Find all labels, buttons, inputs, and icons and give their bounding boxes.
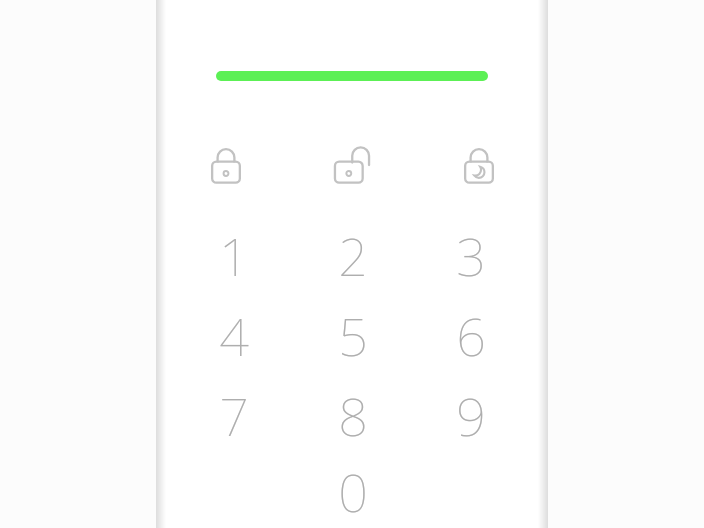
staticText: 8 [338, 380, 368, 451]
button[interactable]: 8 [305, 375, 401, 455]
staticText: 9 [456, 380, 486, 451]
button[interactable]: Night lock [439, 138, 519, 198]
button[interactable]: Locked [186, 138, 266, 198]
staticText: 2 [338, 220, 368, 291]
button[interactable]: Unlocked [313, 138, 393, 198]
staticText: 3 [456, 220, 486, 291]
staticText: 6 [456, 300, 486, 371]
button[interactable]: 6 [423, 295, 519, 375]
staticText: 0 [338, 456, 368, 527]
button[interactable]: 1 [186, 215, 282, 295]
button[interactable]: 9 [423, 375, 519, 455]
staticText: 1 [219, 220, 249, 291]
button[interactable]: 3 [423, 215, 519, 295]
staticText: 5 [338, 300, 368, 371]
button[interactable]: 7 [186, 375, 282, 455]
staticText: 7 [219, 380, 249, 451]
staticText: 4 [219, 300, 249, 371]
button[interactable]: 5 [305, 295, 401, 375]
button[interactable]: 2 [305, 215, 401, 295]
button[interactable]: 0 [305, 455, 401, 528]
button[interactable]: 4 [186, 295, 282, 375]
